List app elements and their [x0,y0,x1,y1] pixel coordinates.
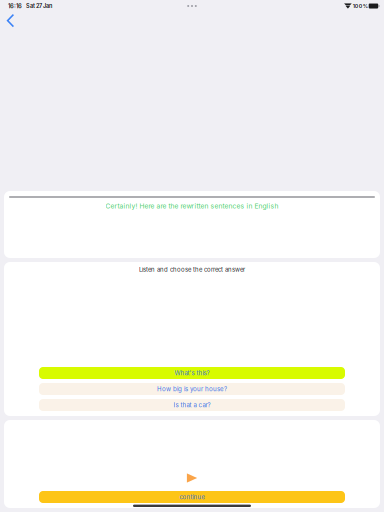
staticText: continue [179,493,204,501]
staticText: 16:16 [8,2,22,10]
staticText: How big is your house? [157,385,227,393]
button[interactable]: Is that a car? [39,399,345,411]
button[interactable]: How big is your house? [39,383,345,395]
button[interactable]: Play audio [186,473,197,483]
staticText: Sat 27 Jan [26,3,52,9]
staticText: Is that a car? [173,401,210,409]
button[interactable]: continue [39,491,345,503]
staticText: Certainly! Here are the rewritten senten… [105,202,278,210]
button[interactable]: Back [0,12,24,30]
button[interactable]: What's this? [39,367,345,379]
staticText: 100% [353,3,368,9]
staticText: What's this? [174,369,209,377]
staticText: Listen and choose the correct answer [139,266,245,273]
